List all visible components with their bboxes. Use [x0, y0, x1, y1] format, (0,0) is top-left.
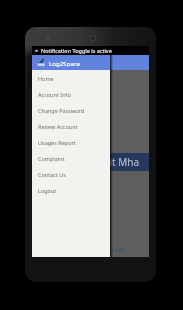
button[interactable]: Contact Us [32, 166, 110, 182]
button[interactable]: Renew Account [32, 118, 110, 134]
staticText: Account Info [38, 91, 71, 98]
button[interactable]: Log2Space logo [32, 55, 110, 70]
staticText: Contact Us [38, 171, 66, 178]
button[interactable]: Change Password [32, 102, 110, 118]
staticText: Powered By Intech Online Pvt. Ltd. [44, 247, 125, 254]
staticText: Usages Report [38, 139, 76, 146]
staticText: Welcome Amit Mha [48, 155, 149, 169]
staticText: Logout [38, 187, 57, 194]
staticText: Change Password [38, 107, 85, 114]
staticText: Home [38, 75, 54, 82]
button[interactable]: Home [32, 70, 110, 86]
staticText: Complaint [38, 155, 65, 162]
staticText: Notification Toggle is active [41, 47, 112, 54]
staticText: Renew Account [38, 123, 78, 130]
staticText: Log2Space [49, 59, 80, 67]
button[interactable]: Usages Report [32, 134, 110, 150]
other: Log2Space logo [37, 58, 45, 67]
button[interactable]: Logout [32, 182, 110, 198]
button[interactable]: Account Info [32, 86, 110, 102]
button[interactable]: Complaint [32, 150, 110, 166]
